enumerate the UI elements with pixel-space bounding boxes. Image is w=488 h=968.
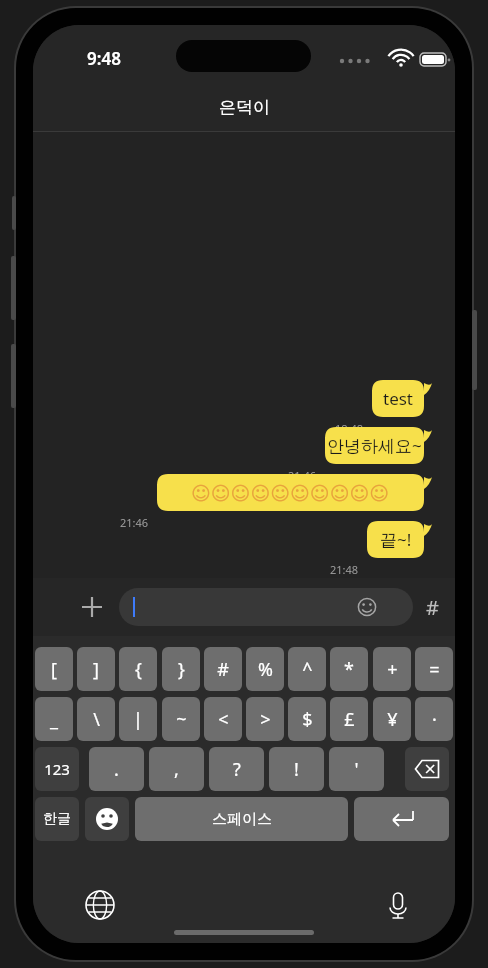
button[interactable]: [ [35, 647, 73, 691]
button[interactable]: } [162, 647, 200, 691]
button[interactable]: ☺☺☺☺☺☺☺☺☺☺ [157, 474, 433, 511]
staticText: ' [354, 757, 359, 782]
staticText: 한글 [43, 810, 71, 828]
button[interactable]: Backspace [405, 747, 449, 791]
staticText: 끝~! [380, 528, 412, 551]
staticText: 안녕하세요~ [327, 434, 422, 457]
button[interactable]: Add attachment [73, 588, 111, 626]
staticText: < [218, 707, 229, 732]
staticText: 21:46 [120, 515, 149, 530]
staticText: , [174, 757, 179, 782]
button[interactable]: ! [269, 747, 324, 791]
staticText: \ [93, 707, 100, 732]
staticText: ! [294, 757, 299, 782]
staticText: { [135, 657, 142, 682]
button[interactable]: 한글 [35, 797, 79, 841]
staticText: = [429, 657, 440, 682]
staticText: 스페이스 [212, 810, 272, 829]
staticText: % [258, 657, 273, 682]
button[interactable]: # [204, 647, 242, 691]
button[interactable]: + [373, 647, 411, 691]
staticText: . [114, 757, 119, 782]
staticText: + [387, 657, 398, 682]
staticText: # [217, 657, 229, 682]
staticText: 은덕이 [219, 97, 270, 118]
staticText: ¥ [387, 707, 398, 732]
button[interactable]: £ [330, 697, 368, 741]
button[interactable]: \ [77, 697, 115, 741]
button[interactable]: > [246, 697, 284, 741]
button[interactable]: 끝~! [367, 521, 433, 558]
button[interactable]: ' [329, 747, 384, 791]
staticText: _ [50, 707, 58, 732]
staticText: £ [344, 707, 355, 732]
button[interactable]: Emoji [119, 588, 413, 626]
button[interactable]: _ [35, 697, 73, 741]
button[interactable]: ¥ [373, 697, 411, 741]
staticText: $ [302, 707, 313, 732]
staticText: 123 [44, 759, 70, 779]
button[interactable]: % [246, 647, 284, 691]
button[interactable]: . [89, 747, 144, 791]
staticText: · [432, 707, 437, 732]
button[interactable]: · [415, 697, 453, 741]
button[interactable]: Hashtag [417, 588, 447, 626]
button[interactable]: Change keyboard [83, 888, 117, 922]
button[interactable]: ~ [162, 697, 200, 741]
button[interactable]: ] [77, 647, 115, 691]
button[interactable]: Voice input [381, 888, 415, 922]
staticText: 9:48 [87, 47, 121, 70]
staticText: ☺☺☺☺☺☺☺☺☺☺ [191, 482, 390, 504]
staticText: > [260, 707, 271, 732]
staticText: ] [93, 657, 99, 682]
button[interactable]: , [149, 747, 204, 791]
staticText: } [178, 657, 185, 682]
staticText: 18:48 [335, 421, 364, 436]
button[interactable]: * [330, 647, 368, 691]
button[interactable]: Enter [354, 797, 449, 841]
button[interactable]: < [204, 697, 242, 741]
staticText: 21:48 [330, 562, 359, 577]
staticText: 21:46 [288, 468, 317, 483]
staticText: ~ [176, 707, 187, 732]
staticText: ? [233, 757, 241, 782]
staticText: # [426, 594, 439, 621]
button[interactable]: 안녕하세요~ [325, 427, 433, 464]
button[interactable]: | [119, 697, 157, 741]
button[interactable]: = [415, 647, 453, 691]
staticText: test [383, 387, 414, 410]
button[interactable]: ^ [288, 647, 326, 691]
button[interactable]: ? [209, 747, 264, 791]
staticText: [ [51, 657, 57, 682]
button[interactable]: 스페이스 [135, 797, 348, 841]
staticText: * [344, 657, 354, 682]
button[interactable]: $ [288, 697, 326, 741]
other: Emoji [357, 597, 377, 617]
staticText: ^ [302, 657, 313, 682]
button[interactable]: 123 [35, 747, 79, 791]
button[interactable]: Emoji keyboard [85, 797, 129, 841]
button[interactable]: test [372, 380, 433, 417]
button[interactable]: { [119, 647, 157, 691]
staticText: | [133, 707, 143, 732]
